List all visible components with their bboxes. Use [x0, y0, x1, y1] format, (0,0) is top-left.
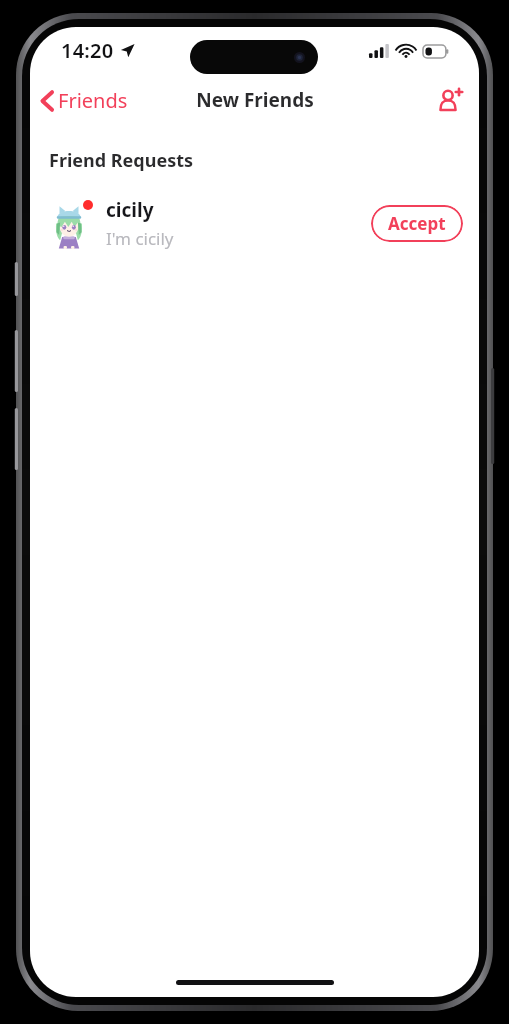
staticText: New Friends [196, 87, 314, 113]
staticText: 14:20 [61, 37, 114, 64]
button[interactable]: Add friend [432, 82, 469, 119]
staticText: Friend Requests [49, 148, 194, 173]
staticText: cicily [106, 197, 154, 223]
button[interactable]: Accept [371, 205, 463, 242]
staticText: Accept [388, 212, 446, 235]
staticText: Friends [58, 87, 128, 114]
button[interactable]: Friends [30, 81, 138, 120]
staticText: I'm cicily [106, 227, 174, 250]
button[interactable]: cicily [30, 191, 479, 256]
